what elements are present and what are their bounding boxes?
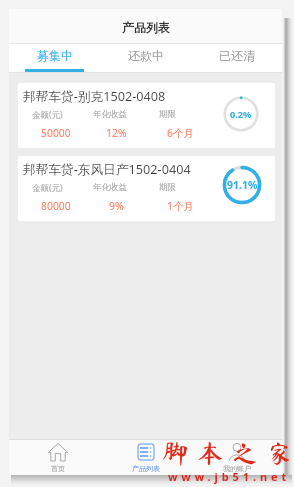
staticText: 91.1% [227, 178, 258, 192]
staticText: 期限 [159, 182, 176, 193]
staticText: 邦帮车贷-别克1502-0408 [23, 87, 166, 104]
staticText: 年化收益 [93, 109, 127, 120]
staticText: 还款中 [128, 48, 164, 63]
staticText: 首页 [51, 464, 65, 473]
other: Product list [136, 442, 156, 462]
staticText: 50000 [41, 126, 71, 140]
staticText: 产品列表 [132, 464, 160, 473]
button[interactable]: Product list [100, 439, 191, 475]
staticText: 产品列表 [122, 20, 170, 35]
staticText: 1个月 [167, 199, 194, 213]
staticText: 金额(元) [32, 109, 63, 121]
staticText: 年化收益 [93, 182, 127, 193]
staticText: 已还清 [219, 48, 255, 63]
button[interactable]: 已还清 [191, 44, 282, 73]
button[interactable]: My account [191, 439, 282, 475]
staticText: 脚本之家 [162, 440, 294, 466]
staticText: 12% [106, 126, 127, 140]
staticText: 0.2% [230, 108, 252, 121]
staticText: 募集中 [37, 48, 73, 63]
staticText: 邦帮车贷-东风日产1502-0404 [23, 160, 191, 177]
staticText: 80000 [41, 199, 71, 213]
staticText: 期限 [159, 109, 176, 120]
other: Home [48, 442, 68, 462]
staticText: www.jb51.net [168, 469, 291, 484]
button[interactable]: 还款中 [100, 44, 191, 73]
staticText: 金额(元) [32, 182, 63, 194]
staticText: 我的账户 [223, 464, 251, 473]
button[interactable]: Home [9, 439, 100, 475]
button[interactable]: 募集中 [9, 44, 100, 73]
button[interactable]: 邦帮车贷-东风日产1502-0404 [18, 156, 275, 221]
other: My account [227, 442, 247, 462]
staticText: 9% [109, 199, 124, 213]
button[interactable]: 邦帮车贷-别克1502-0408 [18, 83, 275, 148]
staticText: 6个月 [167, 126, 194, 140]
